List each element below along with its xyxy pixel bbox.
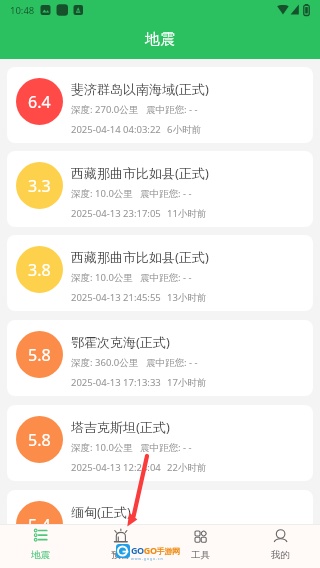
staticText: 17小时前	[167, 376, 207, 389]
staticText: 工具	[191, 549, 210, 561]
staticText: 震中距您: - -	[140, 441, 192, 454]
staticText: 13小时前	[167, 291, 207, 304]
staticText: 11小时前	[167, 207, 207, 220]
staticText: 深度: 10.0公里	[71, 526, 133, 539]
staticText: 5.8	[28, 429, 51, 451]
staticText: 深度: 360.0公里	[71, 356, 139, 369]
staticText: 1天前	[167, 546, 192, 559]
button[interactable]: 地震	[0, 524, 80, 568]
staticText: 2025-04-13 21:45:55	[71, 291, 161, 304]
staticText: 5.4	[28, 514, 51, 536]
button[interactable]: 5.4	[7, 490, 313, 566]
staticText: 6.4	[28, 91, 51, 113]
staticText: 预警	[111, 549, 130, 561]
staticText: 3.8	[28, 259, 51, 281]
staticText: 6小时前	[167, 123, 201, 136]
staticText: 3.3	[28, 175, 51, 197]
staticText: 震中距您: - -	[146, 103, 198, 116]
staticText: 10:48	[10, 4, 35, 17]
staticText: 2025-04-13 08:12:18	[71, 546, 161, 559]
button[interactable]: 3.8	[7, 235, 313, 311]
button[interactable]: 5.8	[7, 320, 313, 396]
staticText: 深度: 270.0公里	[71, 103, 139, 116]
staticText: 鄂霍次克海(正式)	[71, 333, 170, 351]
staticText: GOGO手游网	[131, 544, 180, 556]
staticText: 缅甸(正式)	[71, 503, 131, 521]
staticText: 震中距您: - -	[140, 187, 192, 200]
button[interactable]: 5.8	[7, 405, 313, 481]
staticText: 深度: 10.0公里	[71, 271, 133, 284]
staticText: 深度: 10.0公里	[71, 441, 133, 454]
staticText: 西藏那曲市比如县(正式)	[71, 164, 209, 182]
staticText: 深度: 10.0公里	[71, 187, 133, 200]
staticText: 我的	[271, 549, 290, 561]
staticText: 斐济群岛以南海域(正式)	[71, 80, 209, 98]
staticText: 地震	[145, 30, 175, 49]
staticText: w w w . g o g o . c n	[131, 556, 163, 561]
staticText: 2025-04-13 12:24:04	[71, 461, 161, 474]
button[interactable]: 6.4	[7, 67, 313, 143]
staticText: 22小时前	[167, 461, 207, 474]
button[interactable]: 工具	[160, 524, 240, 568]
staticText: 塔吉克斯坦(正式)	[71, 418, 170, 436]
staticText: 震中距您: - -	[140, 271, 192, 284]
staticText: 地震	[31, 549, 50, 561]
button[interactable]: 3.3	[7, 151, 313, 227]
staticText: 震中距您: - -	[146, 356, 198, 369]
button[interactable]: 我的	[240, 524, 320, 568]
staticText: 2025-04-14 04:03:22	[71, 123, 161, 136]
staticText: 西藏那曲市比如县(正式)	[71, 248, 209, 266]
staticText: 2025-04-13 23:17:05	[71, 207, 161, 220]
button[interactable]: 预警	[80, 524, 160, 568]
staticText: 5.8	[28, 344, 51, 366]
staticText: 2025-04-13 17:13:33	[71, 376, 161, 389]
